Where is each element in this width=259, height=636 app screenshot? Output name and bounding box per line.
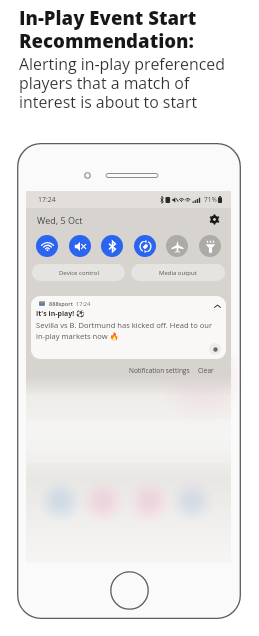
button[interactable]: Clear bbox=[196, 364, 216, 377]
staticText: 71% bbox=[204, 195, 217, 204]
staticText: Notification settings bbox=[129, 366, 190, 375]
staticText: 888sport bbox=[49, 300, 73, 308]
button[interactable]: 888sport bbox=[31, 296, 226, 359]
button[interactable]: Bluetooth bbox=[101, 235, 123, 257]
button[interactable]: Media output bbox=[131, 264, 225, 281]
staticText: Wed, 5 Oct bbox=[37, 214, 83, 226]
button[interactable]: Auto rotate bbox=[134, 235, 156, 257]
button[interactable]: Device control bbox=[32, 264, 125, 281]
staticText: Clear bbox=[198, 366, 214, 375]
button[interactable]: Settings bbox=[208, 213, 221, 226]
button[interactable]: Flashlight bbox=[199, 235, 221, 257]
button[interactable]: Wi-Fi bbox=[36, 235, 58, 257]
staticText: 17:24 bbox=[38, 195, 56, 205]
staticText: Media output bbox=[159, 269, 197, 277]
staticText: It's in-play! ⚽ bbox=[36, 309, 85, 319]
staticText: Device control bbox=[59, 269, 99, 277]
staticText: Alerting in-play preferenced players tha… bbox=[19, 53, 226, 113]
staticText: Sevilla vs B. Dortmund has kicked off. H… bbox=[36, 320, 213, 341]
button[interactable]: Notification settings bbox=[127, 364, 192, 377]
staticText: 17:24 bbox=[76, 300, 91, 308]
staticText: In-Play Event Start Recommendation: bbox=[19, 5, 197, 53]
button[interactable]: Mute bbox=[69, 235, 91, 257]
button[interactable]: Airplane mode bbox=[166, 235, 188, 257]
button[interactable]: 888sport bbox=[209, 343, 221, 355]
